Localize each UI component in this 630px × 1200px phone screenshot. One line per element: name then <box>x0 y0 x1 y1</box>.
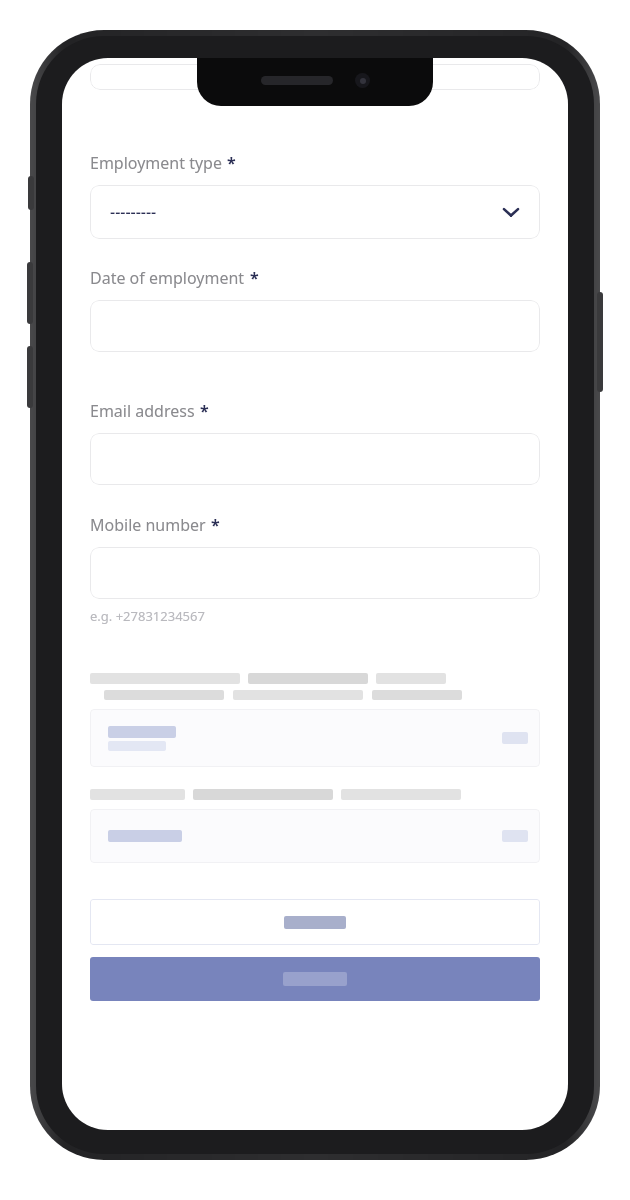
button[interactable] <box>90 64 540 90</box>
button[interactable] <box>90 709 540 767</box>
staticText: * <box>211 514 220 536</box>
other: Open employment type list <box>500 201 522 223</box>
staticText: Email address <box>90 400 195 422</box>
staticText: Employment type <box>90 152 222 174</box>
staticText: * <box>227 152 236 174</box>
staticText: * <box>200 400 209 422</box>
staticText: --------- <box>110 201 157 223</box>
staticText: Date of employment <box>90 267 245 289</box>
button[interactable] <box>90 957 540 1001</box>
button[interactable] <box>90 300 540 352</box>
button[interactable] <box>90 899 540 945</box>
staticText: e.g. +27831234567 <box>90 607 205 625</box>
button[interactable] <box>90 547 540 599</box>
staticText: Mobile number <box>90 514 206 536</box>
button[interactable] <box>90 809 540 863</box>
button[interactable] <box>90 433 540 485</box>
button[interactable]: --------- <box>90 185 540 239</box>
staticText: * <box>250 267 259 289</box>
